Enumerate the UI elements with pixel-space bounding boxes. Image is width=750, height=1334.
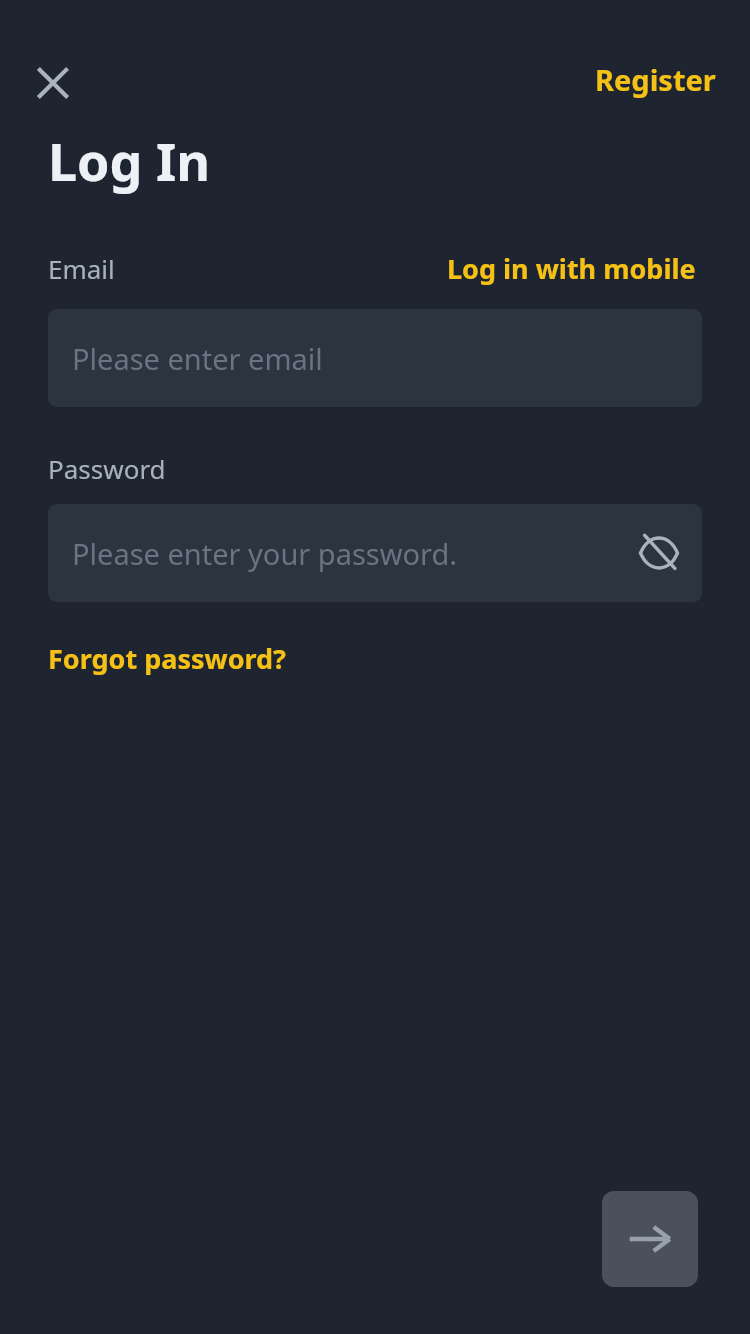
staticText: Log In [48, 125, 210, 196]
button[interactable]: Please enter email [48, 309, 702, 407]
button[interactable]: Register [585, 55, 726, 104]
button[interactable]: Close [27, 57, 79, 109]
button[interactable]: Log in with mobile [441, 246, 702, 291]
button[interactable]: Show password [630, 524, 688, 582]
button[interactable]: Submit [602, 1191, 698, 1287]
staticText: Email [48, 251, 115, 286]
staticText: Please enter your password. [72, 534, 458, 573]
staticText: Forgot password? [48, 640, 286, 677]
button[interactable]: Forgot password? [42, 634, 292, 683]
staticText: Register [595, 60, 716, 99]
button[interactable]: Please enter your password. [48, 504, 702, 602]
staticText: Please enter email [72, 339, 323, 378]
staticText: Log in with mobile [447, 250, 696, 287]
staticText: Password [48, 451, 166, 486]
